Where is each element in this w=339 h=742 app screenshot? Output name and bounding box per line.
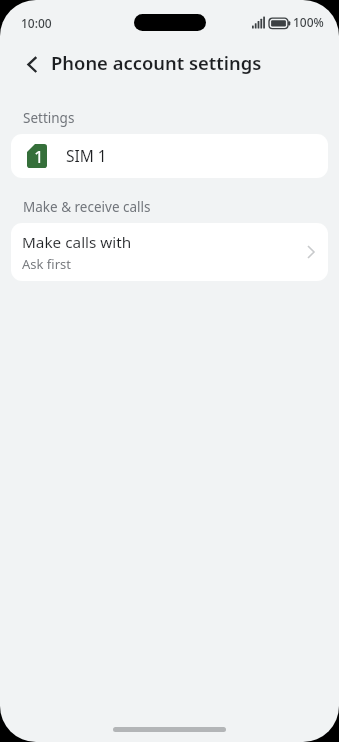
staticText: Make calls with <box>22 232 132 253</box>
staticText: 100% <box>293 14 324 30</box>
staticText: Make & receive calls <box>23 198 151 216</box>
staticText: 10:00 <box>21 15 52 31</box>
button[interactable]: Make calls with <box>11 223 328 281</box>
button[interactable]: 1 <box>11 134 328 178</box>
button[interactable]: Back <box>14 45 50 81</box>
staticText: Ask first <box>22 255 71 273</box>
staticText: 1 <box>34 145 44 168</box>
staticText: SIM 1 <box>66 145 107 166</box>
staticText: Settings <box>23 109 75 127</box>
staticText: Phone account settings <box>51 50 262 75</box>
